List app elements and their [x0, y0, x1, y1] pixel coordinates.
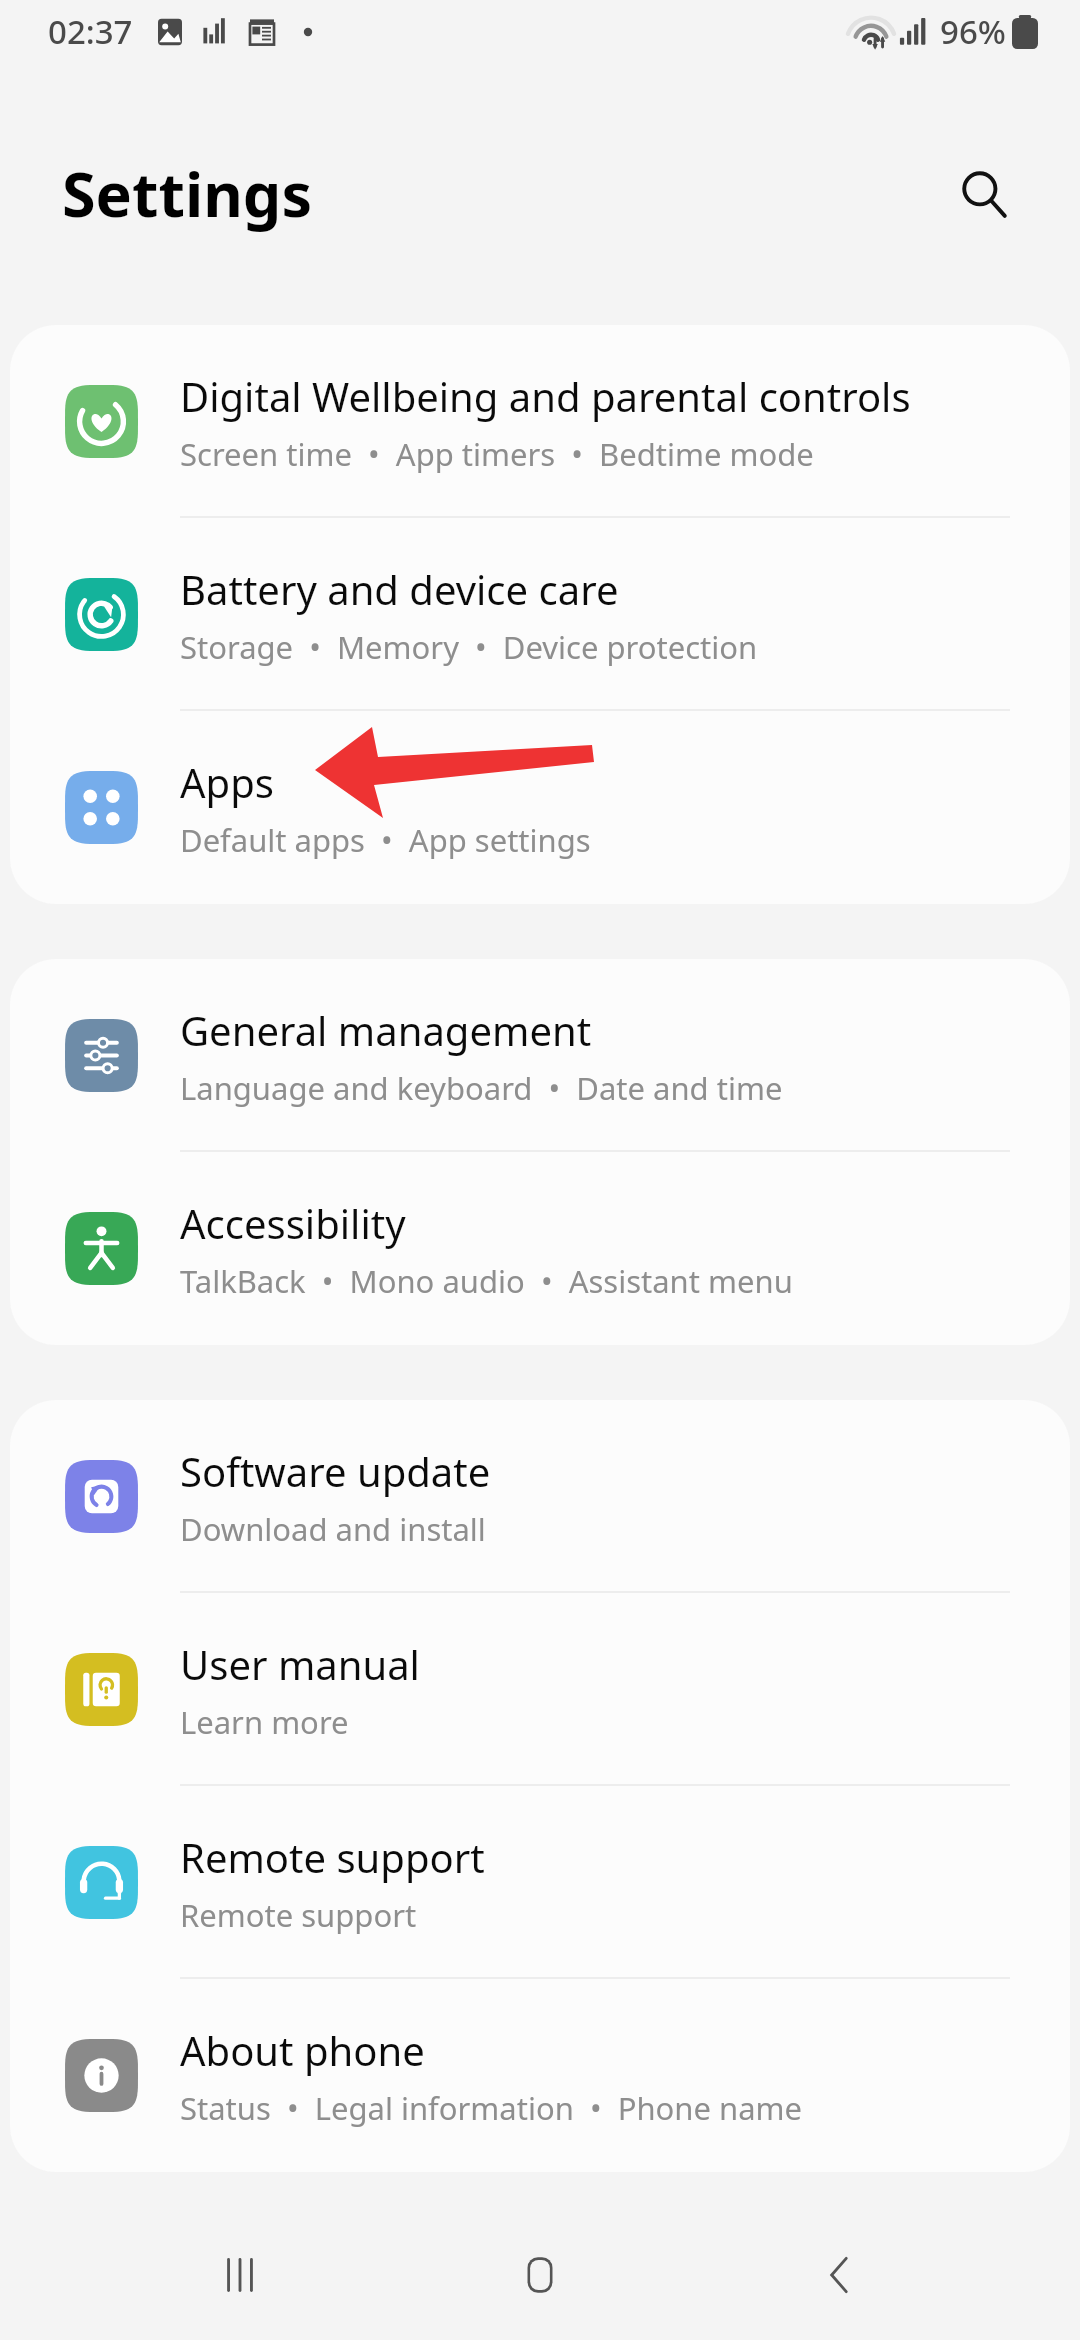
button[interactable]: Recents [180, 2215, 300, 2335]
button[interactable]: Back [780, 2215, 900, 2335]
staticText: Storage • Memory • Device protection [180, 626, 758, 668]
button[interactable]: Battery and device care [10, 518, 1070, 711]
staticText: Digital Wellbeing and parental controls [180, 369, 911, 423]
button[interactable]: User manual [10, 1593, 1070, 1786]
staticText: Remote support [180, 1830, 485, 1884]
button[interactable]: Accessibility [10, 1152, 1070, 1345]
staticText: Default apps • App settings [180, 819, 591, 861]
staticText: About phone [180, 2023, 425, 2077]
button[interactable]: Digital Wellbeing and parental controls [10, 325, 1070, 518]
staticText: User manual [180, 1637, 420, 1691]
staticText: Apps [180, 755, 274, 809]
staticText: Download and install [180, 1508, 486, 1550]
button[interactable]: Remote support [10, 1786, 1070, 1979]
staticText: General management [180, 1003, 592, 1057]
staticText: Language and keyboard • Date and time [180, 1067, 783, 1109]
staticText: Settings [62, 152, 313, 235]
button[interactable]: About phone [10, 1979, 1070, 2172]
staticText: Battery and device care [180, 562, 619, 616]
staticText: Accessibility [180, 1196, 406, 1250]
staticText: Remote support [180, 1894, 417, 1936]
button[interactable]: Software update [10, 1400, 1070, 1593]
button[interactable]: Home [480, 2215, 600, 2335]
staticText: 02:37 [48, 9, 133, 54]
button[interactable]: Search [936, 146, 1032, 242]
staticText: Learn more [180, 1701, 349, 1743]
button[interactable]: Apps [10, 711, 1070, 904]
button[interactable]: General management [10, 959, 1070, 1152]
staticText: Screen time • App timers • Bedtime mode [180, 433, 814, 475]
staticText: Software update [180, 1444, 491, 1498]
staticText: 96% [940, 9, 1006, 54]
staticText: Status • Legal information • Phone name [180, 2087, 803, 2129]
staticText: TalkBack • Mono audio • Assistant menu [180, 1260, 793, 1302]
